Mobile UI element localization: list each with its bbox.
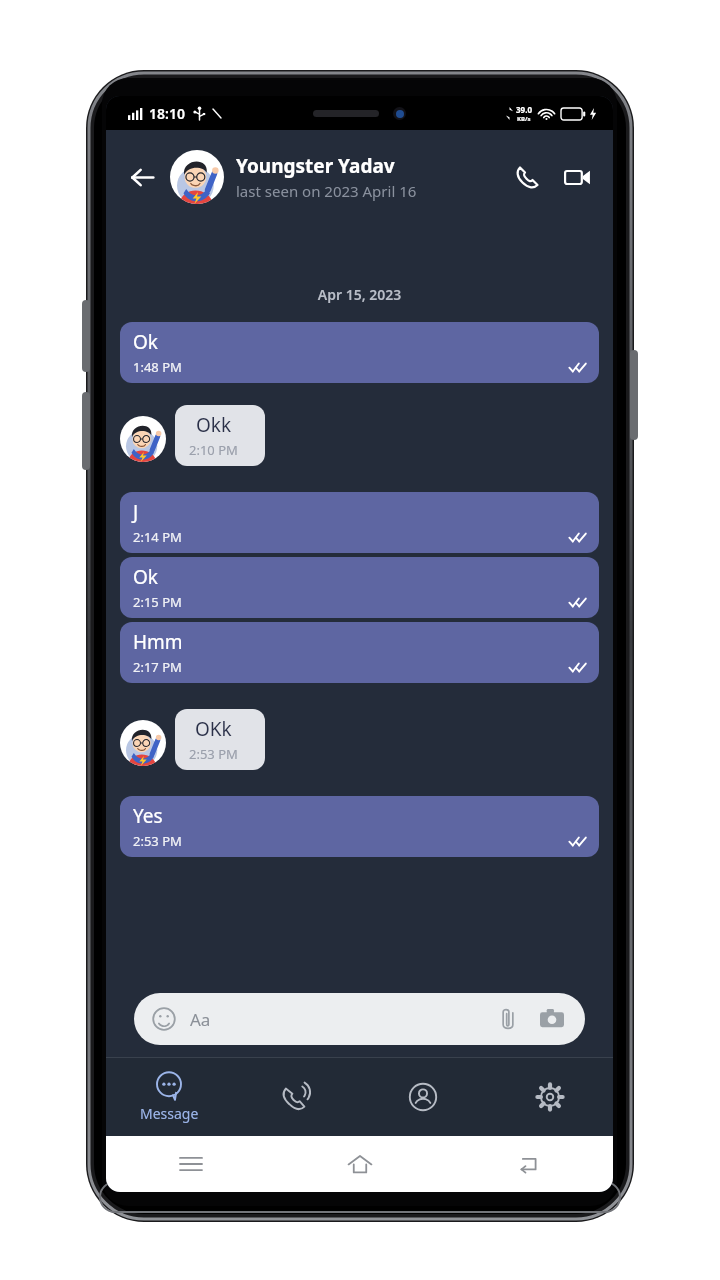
- staticText: 2:14 PM: [133, 528, 182, 546]
- staticText: 2:15 PM: [133, 593, 182, 611]
- button[interactable]: Settings: [486, 1058, 613, 1136]
- staticText: OKk: [195, 716, 232, 742]
- button[interactable]: Home: [275, 1136, 444, 1192]
- staticText: KB/s: [517, 115, 531, 123]
- button[interactable]: Aa: [134, 993, 585, 1045]
- staticText: last seen on 2023 April 16: [236, 181, 417, 201]
- staticText: Ok: [133, 329, 158, 355]
- button[interactable]: Yes: [120, 796, 599, 857]
- button[interactable]: Profile: [359, 1058, 486, 1136]
- button[interactable]: Message: [106, 1058, 232, 1136]
- staticText: 2:10 PM: [189, 441, 238, 459]
- staticText: 2:53 PM: [133, 832, 182, 850]
- staticText: Message: [140, 1104, 199, 1123]
- button[interactable]: Back: [120, 155, 164, 199]
- staticText: 2:53 PM: [189, 745, 238, 763]
- button[interactable]: Hmm: [120, 622, 599, 683]
- staticText: Apr 15, 2023: [120, 285, 599, 304]
- button[interactable]: J: [120, 492, 599, 553]
- staticText: Yes: [133, 803, 163, 829]
- button[interactable]: Back: [444, 1136, 613, 1192]
- button[interactable]: Calls: [232, 1058, 359, 1136]
- staticText: Aa: [190, 1008, 211, 1031]
- staticText: J: [133, 499, 139, 525]
- staticText: Hmm: [133, 629, 183, 655]
- button[interactable]: Video call: [555, 155, 599, 199]
- staticText: Okk: [196, 412, 232, 438]
- staticText: Ok: [133, 564, 158, 590]
- button[interactable]: Okk: [175, 405, 265, 466]
- button[interactable]: Camera: [537, 1004, 567, 1034]
- staticText: 39.0: [516, 104, 532, 115]
- button[interactable]: OKk: [175, 709, 265, 770]
- button[interactable]: Ok: [120, 557, 599, 618]
- staticText: Youngster Yadav: [236, 153, 395, 179]
- button[interactable]: Youngster Yadav: [170, 150, 505, 204]
- button[interactable]: Recent apps: [106, 1136, 275, 1192]
- staticText: 18:10: [149, 104, 185, 123]
- button[interactable]: Attach file: [493, 1004, 523, 1034]
- button[interactable]: Ok: [120, 322, 599, 383]
- staticText: 1:48 PM: [133, 358, 182, 376]
- staticText: 2:17 PM: [133, 658, 182, 676]
- button[interactable]: Voice call: [505, 155, 549, 199]
